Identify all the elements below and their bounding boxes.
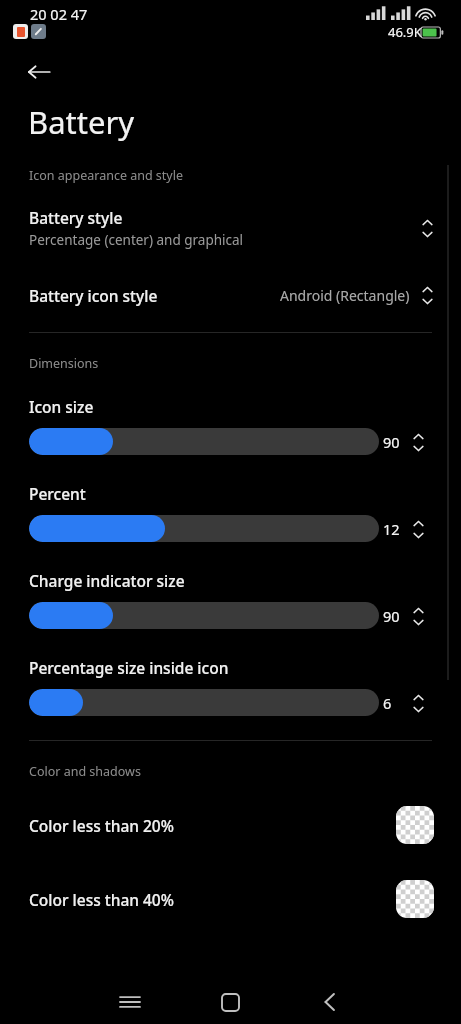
staticText: Battery style bbox=[29, 207, 123, 228]
staticText: 90 bbox=[383, 432, 400, 452]
staticText: 20 02 47 bbox=[30, 4, 88, 24]
button[interactable]: 12 bbox=[0, 515, 461, 542]
staticText: Charge indicator size bbox=[29, 570, 185, 591]
button[interactable]: 6 bbox=[0, 689, 461, 716]
staticText: Android (Rectangle) bbox=[280, 286, 410, 305]
button[interactable]: Battery icon style bbox=[0, 280, 461, 310]
staticText: Battery bbox=[28, 101, 135, 143]
button[interactable]: Change value bbox=[416, 284, 438, 306]
button[interactable]: Change value bbox=[416, 217, 438, 239]
staticText: Percentage (center) and graphical bbox=[29, 231, 244, 249]
button[interactable]: 90 bbox=[0, 428, 461, 455]
button[interactable]: Pick color bbox=[396, 880, 434, 918]
staticText: 12 bbox=[383, 519, 400, 539]
staticText: Icon size bbox=[29, 396, 94, 417]
staticText: Dimensions bbox=[29, 355, 99, 372]
staticText: Percent bbox=[29, 483, 86, 504]
staticText: 90 bbox=[383, 606, 400, 626]
button[interactable]: Battery style bbox=[0, 206, 461, 250]
button[interactable]: Color less than 20% bbox=[0, 802, 461, 848]
staticText: Color less than 20% bbox=[29, 815, 174, 836]
staticText: 46.9K bbox=[388, 23, 422, 41]
staticText: Color and shadows bbox=[29, 763, 141, 780]
staticText: 6 bbox=[383, 693, 392, 713]
button[interactable]: Color less than 40% bbox=[0, 876, 461, 922]
staticText: Battery icon style bbox=[29, 285, 158, 306]
button[interactable]: 90 bbox=[0, 602, 461, 629]
button[interactable]: Back bbox=[308, 980, 352, 1024]
button[interactable]: Back bbox=[17, 50, 61, 94]
button[interactable]: Change value bbox=[407, 431, 429, 453]
button[interactable]: Change value bbox=[407, 518, 429, 540]
staticText: Icon appearance and style bbox=[29, 167, 184, 184]
button[interactable]: Change value bbox=[407, 692, 429, 714]
button[interactable]: Recent apps bbox=[108, 980, 152, 1024]
staticText: Color less than 40% bbox=[29, 889, 174, 910]
staticText: Percentage size inside icon bbox=[29, 657, 229, 678]
button[interactable]: Home bbox=[208, 980, 252, 1024]
button[interactable]: Pick color bbox=[396, 806, 434, 844]
button[interactable]: Change value bbox=[407, 605, 429, 627]
